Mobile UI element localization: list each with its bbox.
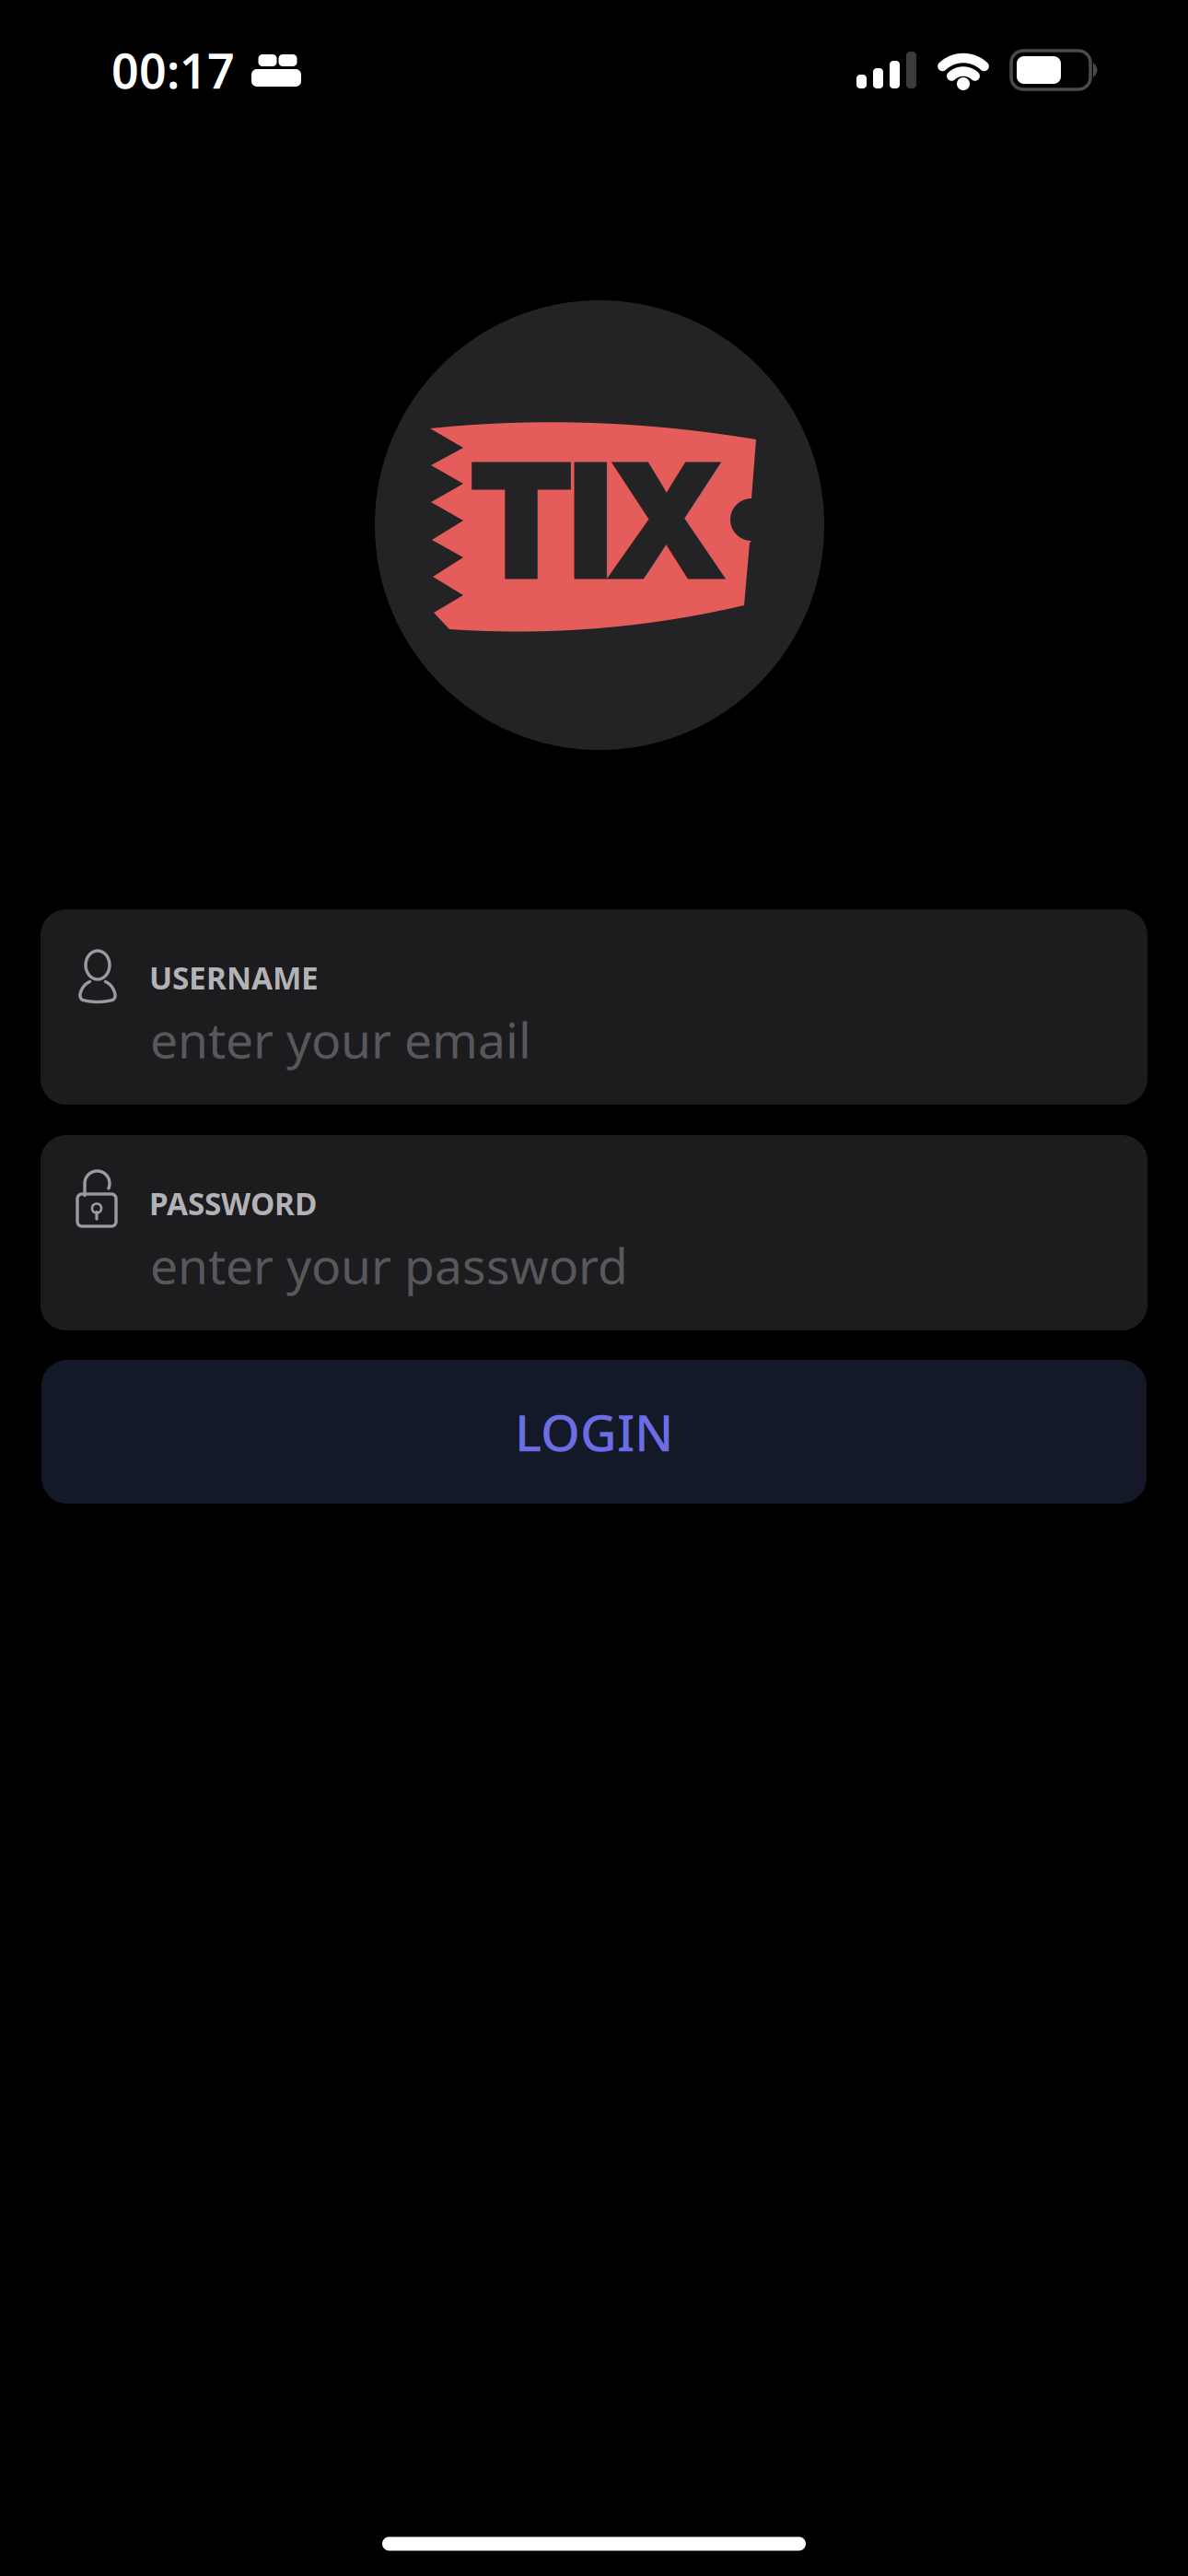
staticText: 00:17 <box>111 38 235 102</box>
button[interactable]: USERNAME <box>41 909 1147 1105</box>
staticText: USERNAME <box>149 957 319 998</box>
staticText: TIX <box>468 423 725 618</box>
staticText: enter your email <box>150 1007 531 1072</box>
button[interactable]: PASSWORD <box>41 1135 1147 1330</box>
staticText: enter your password <box>150 1232 628 1298</box>
staticText: PASSWORD <box>149 1183 317 1224</box>
button[interactable]: LOGIN <box>41 1360 1147 1504</box>
staticText: LOGIN <box>515 1398 673 1465</box>
